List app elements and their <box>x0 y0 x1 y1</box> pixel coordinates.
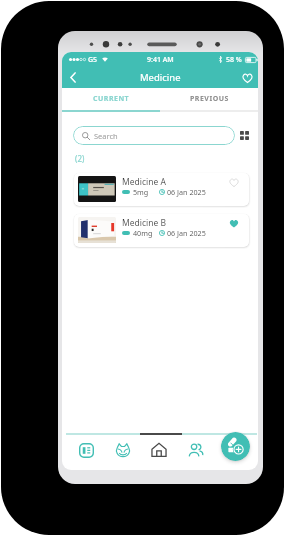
staticText: (2) <box>75 153 85 164</box>
button[interactable]: Pets <box>105 435 141 465</box>
button[interactable]: Grid view <box>237 128 251 142</box>
button[interactable]: Back <box>62 67 84 88</box>
staticText: CURRENT <box>93 94 130 104</box>
staticText: Medicine <box>140 71 181 84</box>
staticText: 06 Jan 2025 <box>167 187 206 197</box>
button[interactable]: Articles <box>68 435 104 465</box>
staticText: 40mg <box>133 228 153 238</box>
button[interactable]: Favorite <box>227 216 241 230</box>
button[interactable]: Add medicine <box>221 432 250 461</box>
button[interactable]: Profile <box>178 435 214 465</box>
staticText: 5mg <box>133 187 149 197</box>
staticText: 9:41 AM <box>147 55 174 65</box>
staticText: 06 Jan 2025 <box>167 228 206 238</box>
button[interactable]: Medicine B <box>74 214 249 247</box>
staticText: Medicine A <box>122 176 166 188</box>
button[interactable]: Search <box>73 126 235 145</box>
staticText: PREVIOUS <box>190 94 229 104</box>
staticText: Medicine B <box>122 217 166 229</box>
button[interactable]: Home <box>141 435 177 465</box>
staticText: G5 <box>88 55 98 65</box>
button[interactable]: PREVIOUS <box>160 88 258 110</box>
button[interactable]: CURRENT <box>62 88 160 110</box>
button[interactable]: Medicine A <box>74 173 249 206</box>
staticText: Search <box>94 131 118 141</box>
button[interactable]: Favorite <box>227 175 241 189</box>
button[interactable]: Favorites <box>236 67 258 88</box>
staticText: 58 % <box>226 55 242 65</box>
